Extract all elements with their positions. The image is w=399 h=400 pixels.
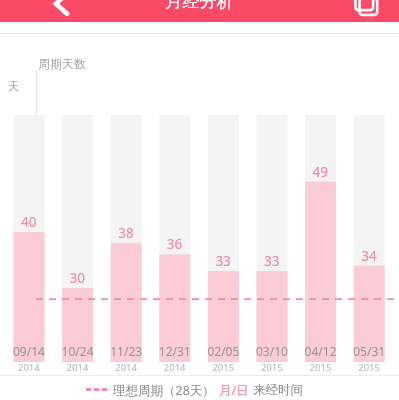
button[interactable]: Records [350,0,384,21]
button[interactable]: Back [44,0,80,21]
